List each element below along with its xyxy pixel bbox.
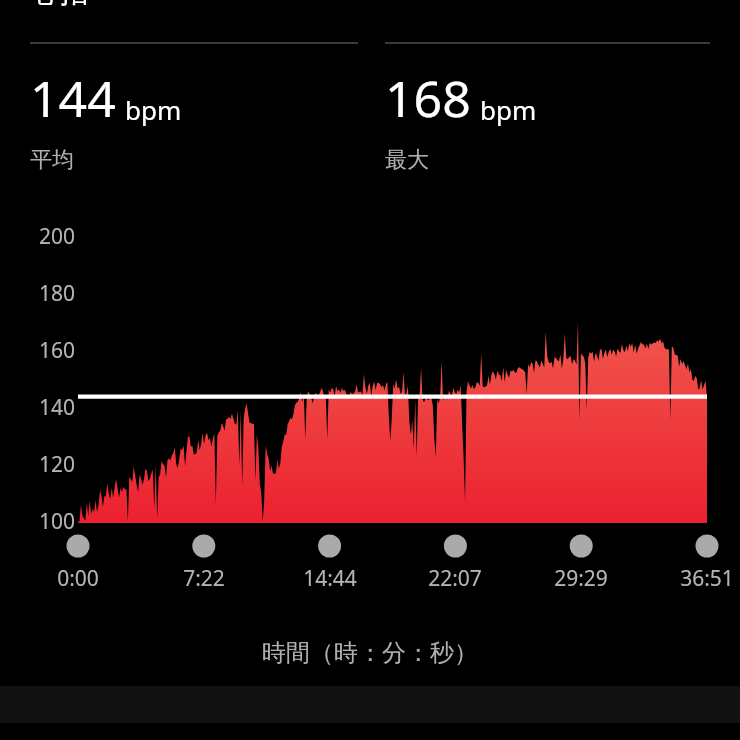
staticText: 160 xyxy=(39,336,76,365)
staticText: 29:29 xyxy=(554,564,608,593)
staticText: 0:00 xyxy=(57,564,99,593)
staticText: 最大 xyxy=(385,146,429,174)
staticText: 心拍 xyxy=(30,0,88,11)
staticText: bpm xyxy=(125,92,182,127)
other: Heart rate chart xyxy=(0,0,740,740)
staticText: 22:07 xyxy=(428,564,482,593)
staticText: 平均 xyxy=(30,146,74,174)
staticText: 36:51 xyxy=(680,564,734,593)
staticText: 7:22 xyxy=(183,564,225,593)
staticText: bpm xyxy=(480,92,537,127)
button[interactable]: 168 xyxy=(385,42,710,174)
staticText: 14:44 xyxy=(303,564,357,593)
staticText: 100 xyxy=(39,507,76,536)
button[interactable]: 144 xyxy=(30,42,358,174)
staticText: 144 xyxy=(30,64,116,132)
staticText: 200 xyxy=(39,222,76,251)
staticText: 180 xyxy=(39,279,76,308)
staticText: 120 xyxy=(39,450,76,479)
button[interactable]: 心拍 xyxy=(30,0,88,11)
staticText: 140 xyxy=(39,393,76,422)
staticText: 168 xyxy=(385,64,471,132)
staticText: 時間（時：分：秒） xyxy=(262,638,478,668)
